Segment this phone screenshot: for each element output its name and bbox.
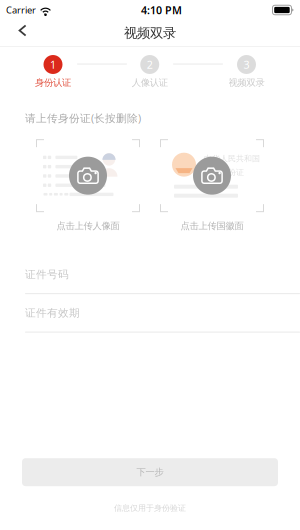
staticText: 身份认证: [35, 77, 71, 88]
staticText: 视频双录: [124, 25, 176, 41]
staticText: 视频双录: [228, 77, 264, 88]
staticText: 请上传身份证(长按删除): [25, 111, 141, 125]
button[interactable]: 下一步: [22, 458, 278, 486]
staticText: 1: [50, 57, 56, 72]
staticText: Carrier: [6, 4, 36, 16]
staticText: 证件有效期: [25, 306, 80, 319]
staticText: 3: [243, 57, 249, 72]
staticText: 人像认证: [132, 77, 168, 88]
staticText: 4:10 PM: [141, 3, 182, 17]
staticText: 2: [147, 57, 153, 72]
button[interactable]: Back: [0, 19, 43, 42]
staticText: 点击上传人像面: [56, 220, 119, 232]
button[interactable]: 中华人民共和国: [160, 139, 264, 232]
staticText: 证件号码: [25, 268, 69, 281]
staticText: 居民身份证: [204, 167, 244, 177]
staticText: 信息仅用于身份验证: [114, 503, 186, 513]
staticText: 点击上传国徽面: [180, 220, 243, 232]
staticText: 下一步: [136, 466, 163, 478]
staticText: 中华人民共和国: [204, 154, 260, 163]
button[interactable]: 点击上传人像面: [36, 139, 140, 232]
